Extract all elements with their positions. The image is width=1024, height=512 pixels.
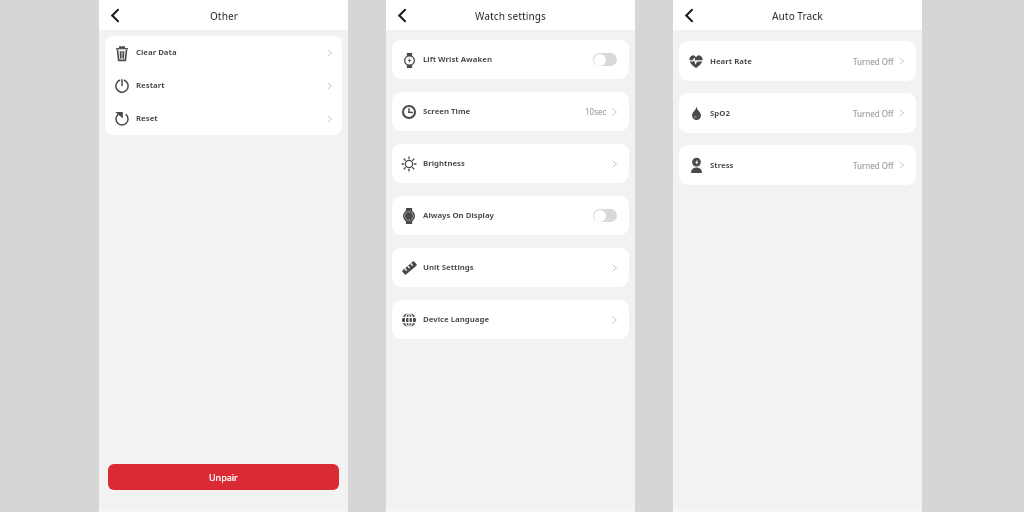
staticText: Other: [210, 9, 238, 23]
button[interactable]: Device Language: [392, 300, 629, 339]
staticText: Auto Track: [772, 9, 823, 23]
button[interactable]: Back: [391, 4, 413, 26]
button[interactable]: Unpair: [108, 464, 339, 490]
staticText: Turned Off: [853, 108, 894, 119]
staticText: Brightness: [423, 158, 465, 169]
staticText: Restart: [136, 80, 165, 91]
button[interactable]: Stress: [679, 145, 916, 185]
staticText: Clear Data: [136, 47, 177, 58]
staticText: Watch settings: [475, 9, 546, 23]
button[interactable]: Reset: [105, 102, 342, 135]
button[interactable]: Back: [104, 4, 126, 26]
staticText: Unpair: [209, 471, 238, 483]
button[interactable]: Heart Rate: [679, 41, 916, 81]
staticText: Unit Settings: [423, 262, 474, 273]
staticText: Stress: [710, 160, 734, 171]
button[interactable]: Clear Data: [105, 36, 342, 69]
button[interactable]: Lift Wrist Awaken: [392, 40, 629, 79]
staticText: 10sec: [585, 106, 607, 117]
staticText: Always On Display: [423, 210, 495, 221]
button[interactable]: SpO2: [679, 93, 916, 133]
button[interactable]: Unit Settings: [392, 248, 629, 287]
button[interactable]: Back: [678, 4, 700, 26]
button[interactable]: Screen Time: [392, 92, 629, 131]
staticText: Turned Off: [853, 160, 894, 171]
button[interactable]: Toggle: [593, 53, 617, 66]
button[interactable]: Brightness: [392, 144, 629, 183]
staticText: Reset: [136, 113, 158, 124]
staticText: Lift Wrist Awaken: [423, 54, 493, 65]
staticText: Screen Time: [423, 106, 471, 117]
staticText: Turned Off: [853, 56, 894, 67]
button[interactable]: Toggle: [593, 209, 617, 222]
button[interactable]: Restart: [105, 69, 342, 102]
button[interactable]: Always On Display: [392, 196, 629, 235]
staticText: Device Language: [423, 314, 490, 325]
staticText: SpO2: [710, 108, 730, 119]
staticText: Heart Rate: [710, 56, 753, 67]
